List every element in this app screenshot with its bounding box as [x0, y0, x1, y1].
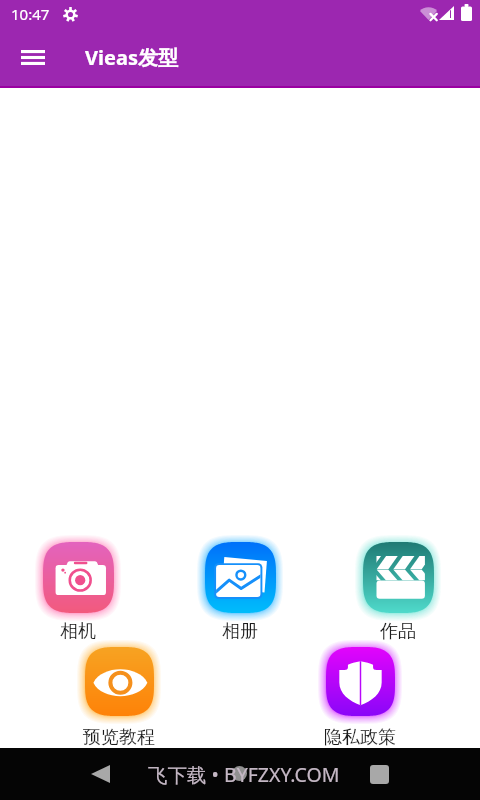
button[interactable]: Open navigation menu	[10, 34, 55, 79]
staticText: 飞下载 • BYFZXY.COM	[148, 761, 340, 788]
staticText: 相机	[18, 620, 138, 643]
button[interactable]	[346, 537, 450, 653]
button[interactable]	[188, 537, 292, 653]
button[interactable]	[308, 642, 412, 756]
button[interactable]	[67, 642, 171, 756]
staticText: 相册	[180, 620, 300, 643]
staticText: 10:47	[11, 4, 50, 24]
staticText: Vieas发型	[85, 44, 178, 71]
button[interactable]	[26, 537, 130, 653]
button[interactable]: Recent apps	[355, 750, 403, 798]
staticText: 作品	[338, 620, 458, 643]
staticText: 预览教程	[59, 726, 179, 749]
staticText: 隐私政策	[300, 726, 420, 749]
button[interactable]: Back	[76, 750, 124, 798]
